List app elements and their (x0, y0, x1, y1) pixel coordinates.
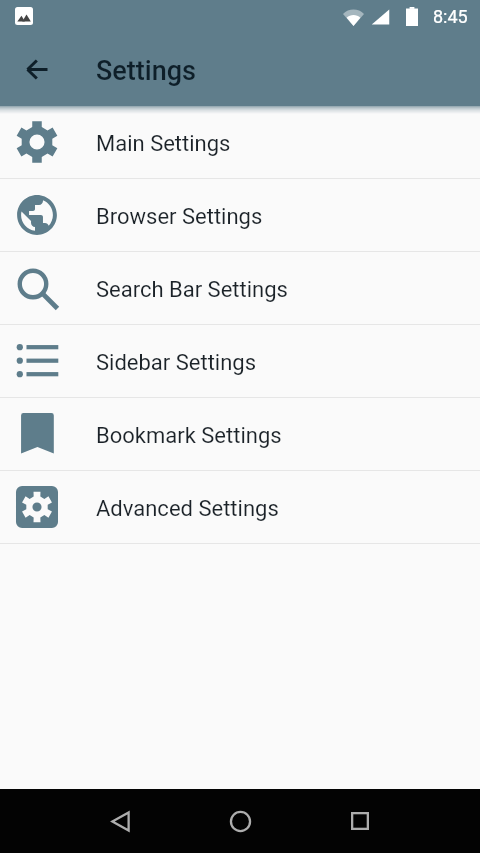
button[interactable]: Back (60, 789, 180, 853)
button[interactable]: Home (180, 789, 300, 853)
button[interactable]: Search Bar Settings (0, 252, 480, 324)
staticText: Settings (96, 55, 196, 87)
button[interactable]: Sidebar Settings (0, 325, 480, 397)
staticText: Sidebar Settings (96, 350, 257, 376)
button[interactable]: Back (9, 41, 65, 97)
button[interactable]: Main Settings (0, 106, 480, 178)
staticText: Main Settings (96, 131, 231, 157)
button[interactable]: Recent apps (300, 789, 420, 853)
staticText: 8:45 (433, 6, 468, 27)
button[interactable]: Advanced Settings (0, 471, 480, 543)
staticText: Browser Settings (96, 204, 263, 230)
staticText: Bookmark Settings (96, 423, 282, 449)
staticText: Search Bar Settings (96, 277, 288, 303)
button[interactable]: Browser Settings (0, 179, 480, 251)
button[interactable]: Bookmark Settings (0, 398, 480, 470)
staticText: Advanced Settings (96, 496, 279, 522)
